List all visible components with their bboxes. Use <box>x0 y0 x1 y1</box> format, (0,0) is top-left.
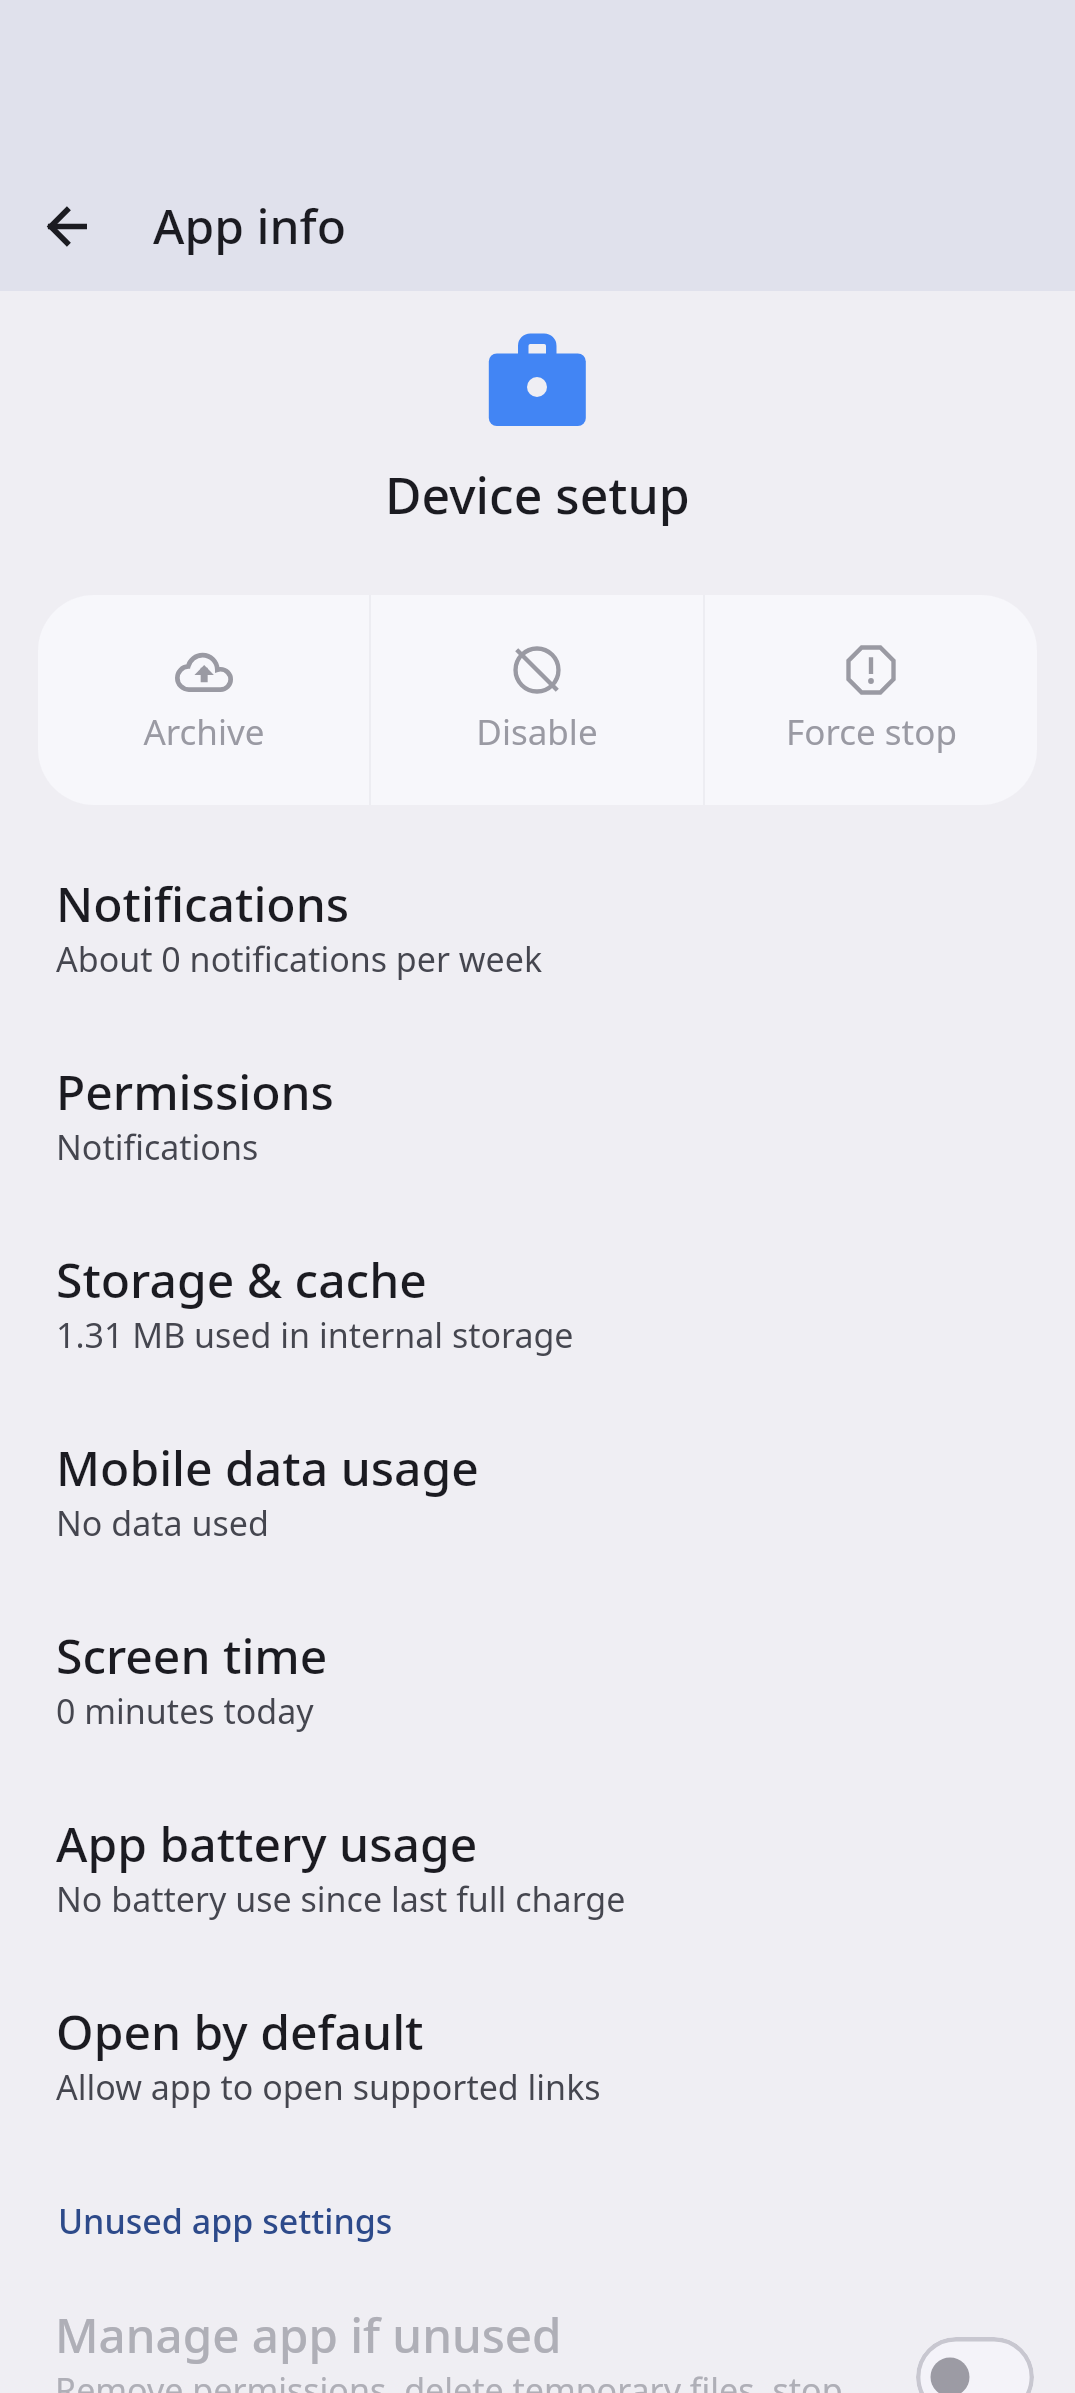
staticText: Permissions <box>56 1059 334 1124</box>
button[interactable]: Manage app if unused toggle <box>916 2337 1034 2393</box>
staticText: Remove permissions, delete temporary fil… <box>55 2367 843 2393</box>
staticText: Screen time <box>56 1623 328 1688</box>
staticText: Storage & cache <box>56 1247 427 1312</box>
staticText: App battery usage <box>56 1811 478 1876</box>
staticText: Notifications <box>56 871 350 936</box>
staticText: No data used <box>56 1500 269 1546</box>
staticText: No battery use since last full charge <box>56 1876 626 1922</box>
staticText: App info <box>153 193 346 258</box>
button[interactable]: Storage & cache <box>0 1235 1075 1423</box>
staticText: Allow app to open supported links <box>56 2064 601 2110</box>
other: Device setup app icon <box>488 330 586 430</box>
button[interactable]: Back <box>44 203 91 250</box>
button[interactable]: Disable <box>371 595 703 805</box>
button[interactable]: Screen time <box>0 1611 1075 1799</box>
button[interactable]: Permissions <box>0 1047 1075 1235</box>
button[interactable]: Archive <box>38 595 369 805</box>
staticText: Disable <box>476 708 598 756</box>
staticText: 0 minutes today <box>56 1688 314 1734</box>
staticText: 1.31 MB used in internal storage <box>56 1312 574 1358</box>
button[interactable]: Manage app if unused <box>0 2302 1075 2393</box>
staticText: About 0 notifications per week <box>56 936 543 982</box>
staticText: Manage app if unused <box>55 2302 562 2367</box>
staticText: Mobile data usage <box>56 1435 479 1500</box>
button[interactable]: App battery usage <box>0 1799 1075 1987</box>
button[interactable]: Unused app settings <box>0 2188 1075 2254</box>
staticText: Open by default <box>56 1999 424 2064</box>
staticText: Unused app settings <box>58 2198 393 2244</box>
staticText: Archive <box>143 708 265 756</box>
staticText: Force stop <box>786 708 957 756</box>
button[interactable]: Notifications <box>0 859 1075 1047</box>
button[interactable]: Force stop <box>705 595 1037 805</box>
button[interactable]: Open by default <box>0 1987 1075 2175</box>
staticText: Device setup <box>385 461 690 529</box>
button[interactable]: Mobile data usage <box>0 1423 1075 1611</box>
staticText: Notifications <box>56 1124 259 1170</box>
